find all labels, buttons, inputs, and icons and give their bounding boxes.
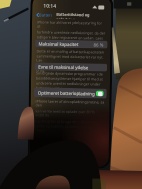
staticText: batteriopladning aktiveres kun pa steder… [35,123,104,135]
button[interactable]: Maksimal kapacitet [39,39,104,48]
staticText: tidligere blev registreret en sadan. Lae… [37,34,106,46]
staticText: Dette er en maling af batterikapaciteten [36,48,105,55]
staticText: undvaere uventet nedlukninger under [36,80,101,86]
staticText: sammenlignet med da batteriet var nyt. L… [36,53,105,65]
staticText: Evne til maksimal ydelse [38,63,89,70]
staticText: har brug for at bruge den. Optimeret [35,118,98,124]
button[interactable]: Evne til maksimal ydelse [38,62,103,71]
button[interactable]: Optimeret batteriopladning [38,87,104,99]
staticText: Smidigede dynamiske programmer i de [36,70,103,77]
staticText: besiddelsessystemer hjaelper til med at [36,75,103,82]
staticText: kan vente med at oplade over 80 %, indti… [35,108,104,120]
staticText: 86 % [94,41,104,48]
staticText: Batteri [39,12,52,18]
staticText: iPhone laerer af din opladningsrutine, s… [35,98,105,110]
staticText: Batteritilstand og opladning [56,12,108,20]
staticText: Optimeret batteriopladning [38,89,96,96]
staticText: kapacitet kan medfore faerre timers brug… [36,63,105,75]
staticText: forhindre uventede nedlukninger, da der [37,29,106,36]
staticText: batteriet aeldes. [36,85,64,91]
staticText: Maksimal kapacitet [39,40,79,47]
staticText: iPhone har aktiveret ydelsesstyring for … [37,19,106,31]
staticText: 10:14 [43,2,56,10]
button[interactable]: Back to Batteri [36,12,52,18]
